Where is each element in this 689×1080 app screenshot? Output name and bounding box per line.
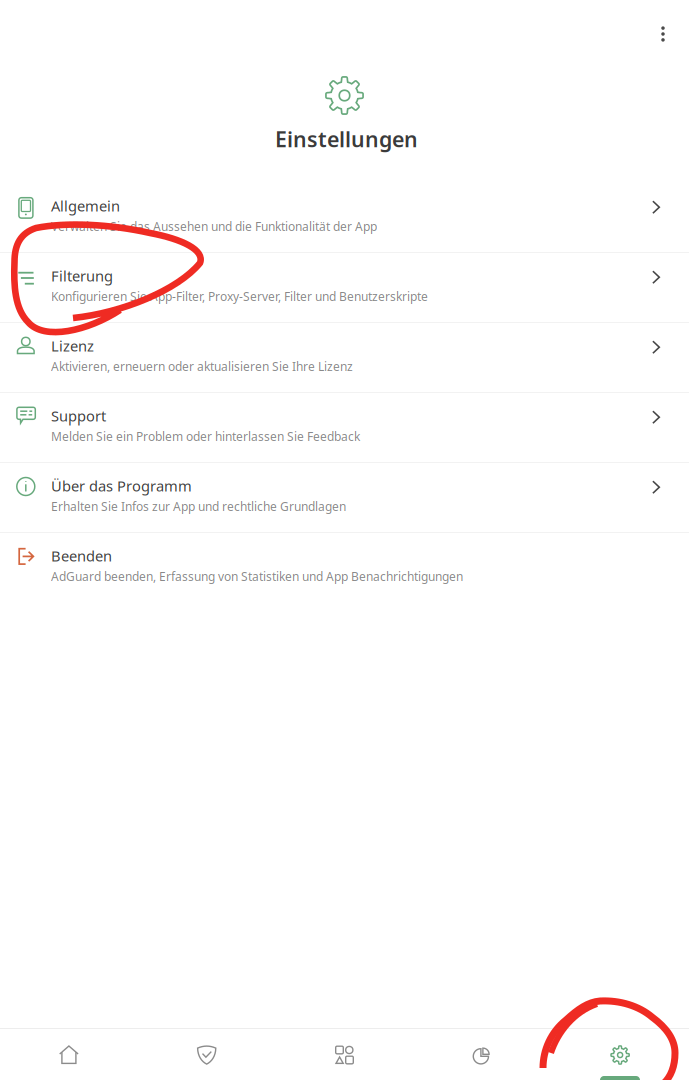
staticText: Verwalten Sie das Aussehen und die Funkt…	[51, 218, 377, 234]
staticText: Erhalten Sie Infos zur App und rechtlich…	[51, 498, 346, 514]
staticText: Melden Sie ein Problem oder hinterlassen…	[51, 428, 360, 444]
button[interactable]: Settings	[551, 1029, 689, 1080]
button[interactable]: More options	[641, 12, 685, 56]
button[interactable]: Apps	[276, 1029, 413, 1080]
staticText: Über das Programm	[51, 476, 192, 495]
staticText: Filterung	[51, 266, 113, 285]
staticText: Aktivieren, erneuern oder aktualisieren …	[51, 358, 353, 374]
button[interactable]: Statistics	[413, 1029, 551, 1080]
staticText: Konfigurieren Sie App-Filter, Proxy-Serv…	[51, 288, 428, 304]
staticText: Allgemein	[51, 196, 120, 215]
button[interactable]: Protection	[138, 1029, 276, 1080]
staticText: AdGuard beenden, Erfassung von Statistik…	[51, 568, 463, 584]
staticText: Support	[51, 406, 106, 425]
button[interactable]: Support	[0, 393, 689, 462]
button[interactable]: Lizenz	[0, 323, 689, 392]
button[interactable]: Filterung	[0, 253, 689, 322]
staticText: Einstellungen	[275, 125, 418, 153]
button[interactable]: Über das Programm	[0, 463, 689, 532]
button[interactable]: Home	[0, 1029, 138, 1080]
button[interactable]: Allgemein	[0, 183, 689, 252]
button[interactable]: Beenden	[0, 533, 689, 602]
staticText: Beenden	[51, 546, 112, 565]
staticText: Lizenz	[51, 336, 94, 355]
